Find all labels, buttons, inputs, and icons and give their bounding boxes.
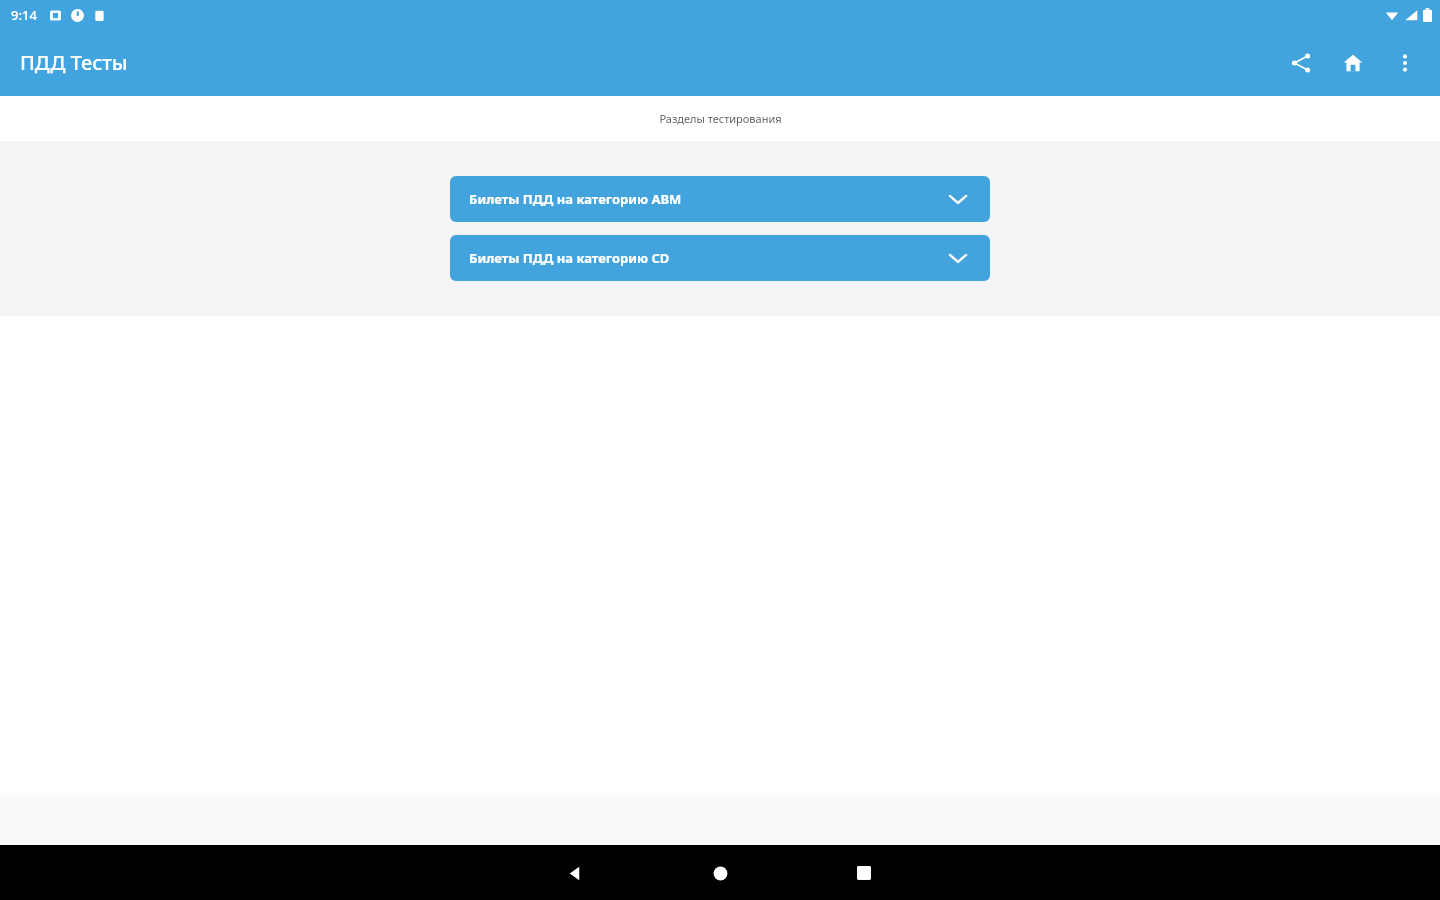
- button[interactable]: Home: [696, 849, 744, 897]
- button[interactable]: Билеты ПДД на категорию CD: [450, 235, 990, 281]
- button[interactable]: More options: [1382, 40, 1428, 86]
- button[interactable]: Recent apps: [840, 849, 888, 897]
- staticText: Билеты ПДД на категорию CD: [469, 249, 670, 267]
- button[interactable]: Home: [1330, 40, 1376, 86]
- staticText: 9:14: [11, 6, 37, 24]
- staticText: Билеты ПДД на категорию ABM: [469, 190, 682, 208]
- staticText: ПДД Тесты: [20, 49, 128, 76]
- button[interactable]: Back: [551, 849, 599, 897]
- button[interactable]: Билеты ПДД на категорию ABM: [450, 176, 990, 222]
- button[interactable]: Share: [1278, 40, 1324, 86]
- staticText: Разделы тестирования: [659, 111, 782, 126]
